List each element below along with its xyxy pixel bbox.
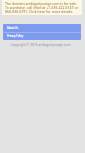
button[interactable]: The domain ambiguitysurge.com is for sal… <box>2 0 82 15</box>
staticText: Privacy Policy <box>7 34 24 38</box>
staticText: Copyright © 2015 ambiguitysurge.com <box>0 42 83 46</box>
button[interactable]: About Us <box>3 24 81 32</box>
staticText: The domain ambiguitysurge.com is for sal… <box>5 1 82 14</box>
button[interactable]: Privacy Policy <box>3 32 81 40</box>
staticText: About Us <box>7 26 19 30</box>
